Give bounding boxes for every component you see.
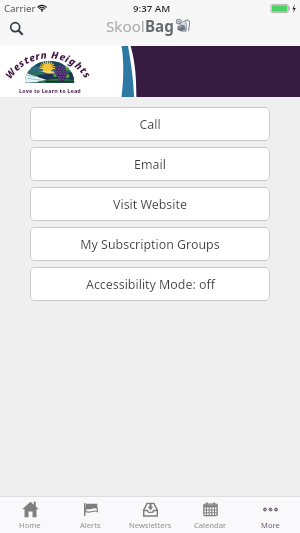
button[interactable]: Home xyxy=(0,497,60,533)
staticText: Bag xyxy=(145,16,174,37)
button[interactable]: Accessibility Mode: off xyxy=(30,267,270,301)
button[interactable]: My Subscription Groups xyxy=(30,227,270,261)
staticText: Carrier xyxy=(4,2,36,15)
staticText: 9:37 AM xyxy=(133,2,171,15)
staticText: Accessibility Mode: off xyxy=(86,276,215,293)
staticText: Alerts xyxy=(80,520,101,530)
button[interactable]: Search xyxy=(5,17,28,40)
staticText: Calendar xyxy=(194,520,227,530)
staticText: Skool xyxy=(106,16,145,37)
staticText: Love to Learn to Lead xyxy=(19,87,81,94)
staticText: More xyxy=(261,520,280,530)
button[interactable]: Visit Website xyxy=(30,187,270,221)
button[interactable]: Email xyxy=(30,147,270,181)
button[interactable]: More xyxy=(240,497,300,533)
button[interactable]: Alerts xyxy=(60,497,120,533)
staticText: My Subscription Groups xyxy=(80,236,220,253)
staticText: Newsletters xyxy=(129,520,172,530)
staticText: Email xyxy=(134,156,166,173)
button[interactable]: Calendar xyxy=(180,497,240,533)
button[interactable]: Newsletters xyxy=(120,497,180,533)
button[interactable]: Call xyxy=(30,107,270,141)
staticText: Call xyxy=(139,116,161,133)
staticText: Home xyxy=(19,520,41,530)
staticText: Visit Website xyxy=(113,196,187,213)
